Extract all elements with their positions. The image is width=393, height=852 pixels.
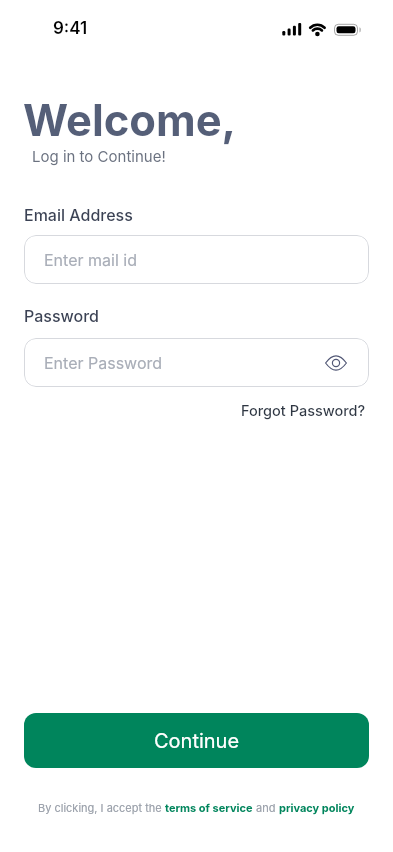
button[interactable] (325, 355, 347, 371)
button[interactable]: Continue (24, 713, 369, 768)
staticText: Enter Password (44, 353, 163, 372)
button[interactable]: Forgot Password? (241, 402, 366, 420)
staticText: Enter mail id (44, 250, 137, 269)
staticText: Password (24, 306, 99, 325)
staticText: Welcome, (23, 94, 237, 147)
staticText: Continue (154, 729, 240, 753)
button[interactable]: terms of service (165, 801, 253, 814)
staticText: Log in to Continue! (32, 147, 166, 165)
button[interactable]: Enter mail id (24, 235, 369, 284)
button[interactable]: Enter Password (24, 338, 369, 387)
staticText: 9:41 (53, 18, 88, 39)
staticText: and (253, 801, 279, 814)
staticText: By clicking, I accept the (38, 801, 165, 814)
staticText: Email Address (24, 205, 133, 224)
button[interactable]: privacy policy (279, 801, 355, 814)
